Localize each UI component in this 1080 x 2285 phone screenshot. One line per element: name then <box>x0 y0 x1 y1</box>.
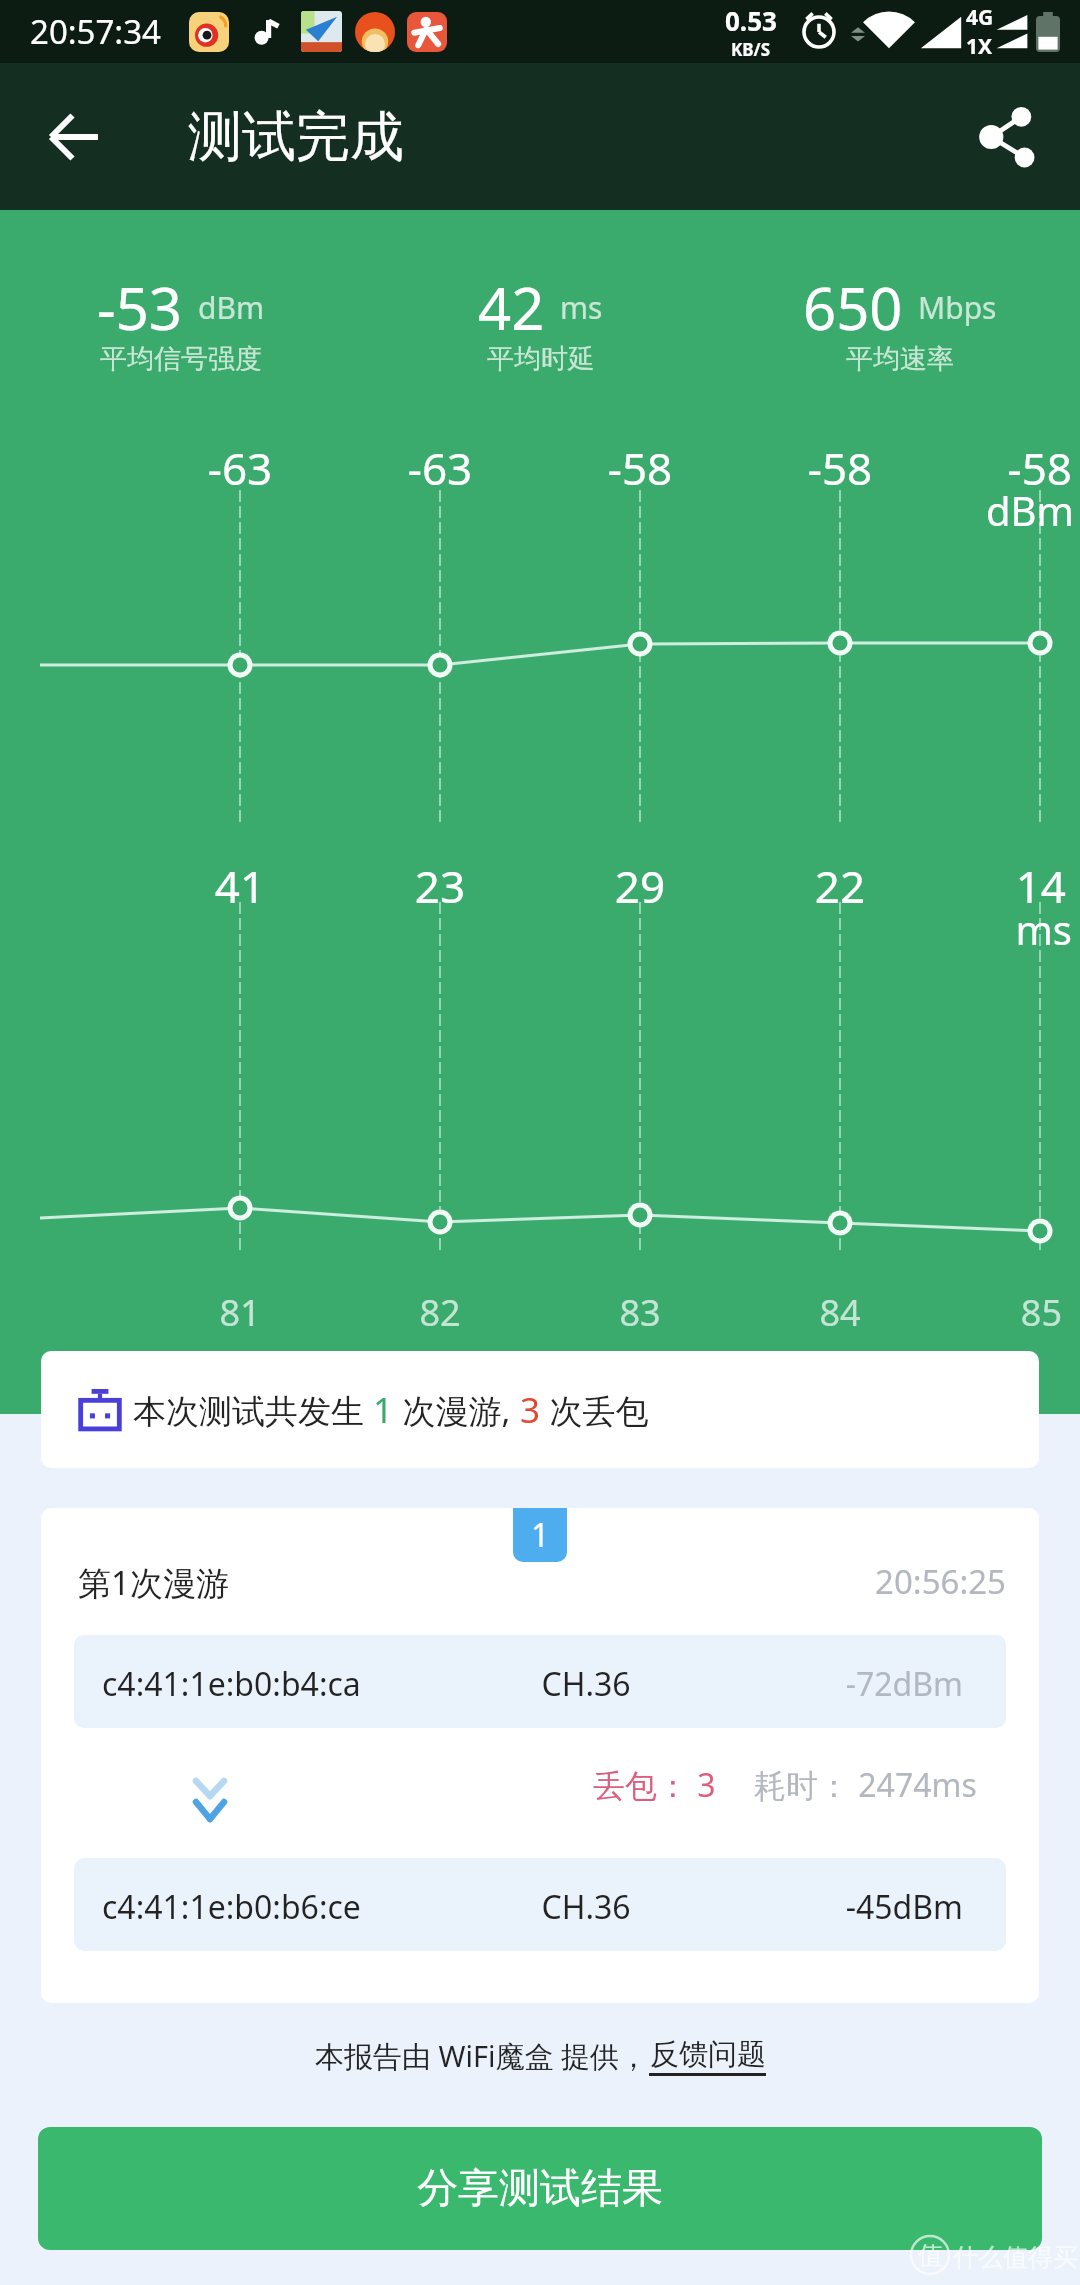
staticText: 83 <box>540 1288 740 1337</box>
staticText: -72dBm <box>74 1662 963 1706</box>
staticText: 什么值得买 <box>953 2242 1078 2273</box>
staticText: 1 <box>531 1513 550 1557</box>
staticText: dBm <box>198 287 264 328</box>
staticText: 平均时延 <box>487 342 595 376</box>
staticText: 测试完成 <box>188 103 404 171</box>
staticText: 值 <box>918 2240 943 2271</box>
button[interactable]: c4:41:1e:b0:b4:ca <box>74 1635 1006 1728</box>
staticText: 分享测试结果 <box>417 2163 663 2215</box>
button[interactable]: c4:41:1e:b0:b6:ce <box>74 1858 1006 1951</box>
staticText: 29 <box>540 856 740 916</box>
staticText: CH.36 <box>120 1662 1006 1706</box>
staticText: 41 <box>140 856 340 916</box>
staticText: 14 <box>766 856 1066 916</box>
staticText: 平均信号强度 <box>100 342 262 376</box>
staticText: 20:56:25 <box>41 1559 1006 1604</box>
staticText: -58 <box>772 438 1072 498</box>
staticText: 丢包： 3 <box>593 1763 716 1807</box>
staticText: 平均速率 <box>846 342 954 376</box>
staticText: 次丢包 <box>541 1388 649 1433</box>
staticText: -63 <box>340 438 540 498</box>
button[interactable]: 反馈问题 <box>649 2036 766 2076</box>
button[interactable]: Expand <box>128 1746 292 1858</box>
button[interactable]: Share <box>958 89 1054 185</box>
button[interactable]: 本次测试共发生 <box>41 1351 1039 1468</box>
staticText: -58 <box>740 438 940 498</box>
staticText: c4:41:1e:b0:b4:ca <box>102 1662 361 1706</box>
staticText: 85 <box>762 1288 1062 1337</box>
staticText: 4G <box>966 3 994 32</box>
staticText: 反馈问题 <box>650 2036 766 2073</box>
staticText: 本次测试共发生 <box>133 1388 373 1433</box>
staticText: -63 <box>140 438 340 498</box>
staticText: 84 <box>740 1288 940 1337</box>
button[interactable]: Back <box>26 89 122 185</box>
staticText: 第1次漫游 <box>78 1560 229 1605</box>
staticText: 81 <box>140 1288 340 1337</box>
staticText: 次漫游, <box>394 1388 520 1433</box>
staticText: dBm <box>774 483 1074 537</box>
staticText: 3 <box>520 1386 541 1434</box>
staticText: KB/S <box>731 38 771 61</box>
staticText: c4:41:1e:b0:b6:ce <box>102 1885 361 1929</box>
staticText: 20:57:34 <box>30 9 161 54</box>
staticText: -53 <box>97 268 183 347</box>
staticText: 22 <box>740 856 940 916</box>
staticText: Mbps <box>918 287 997 328</box>
staticText: 1X <box>966 32 993 61</box>
staticText: ms <box>560 287 603 328</box>
staticText: CH.36 <box>120 1885 1006 1929</box>
staticText: 0.53 <box>725 3 777 38</box>
staticText: 耗时： 2474ms <box>754 1763 977 1807</box>
staticText: 82 <box>340 1288 540 1337</box>
staticText: 1 <box>373 1386 394 1434</box>
staticText: 23 <box>340 856 540 916</box>
button[interactable]: 分享测试结果 <box>38 2127 1042 2250</box>
staticText: -58 <box>540 438 740 498</box>
staticText: 本报告由 WiFi魔盒 提供， <box>315 2036 649 2076</box>
staticText: 42 <box>478 268 545 347</box>
staticText: 650 <box>803 268 903 347</box>
staticText: ms <box>772 902 1072 956</box>
staticText: -45dBm <box>74 1885 963 1929</box>
